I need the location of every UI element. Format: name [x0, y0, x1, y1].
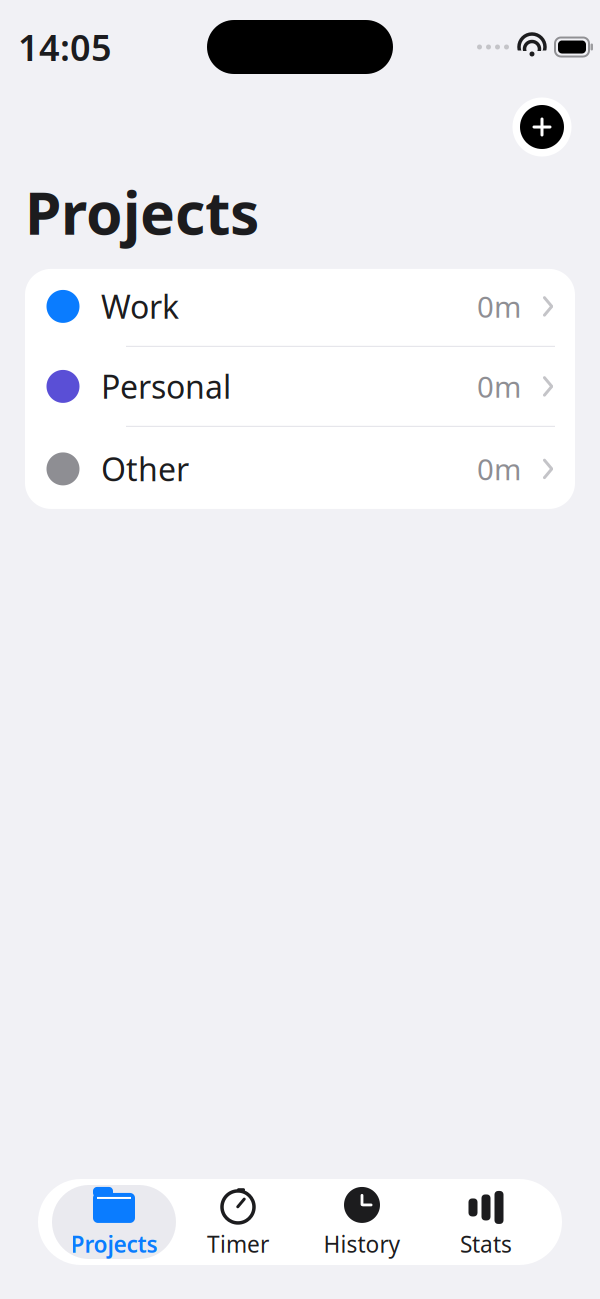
staticText: Stats: [460, 1229, 512, 1259]
staticText: Other: [101, 448, 189, 490]
staticText: Projects: [25, 173, 259, 251]
staticText: 14:05: [18, 23, 112, 71]
staticText: Personal: [101, 365, 231, 408]
staticText: 0m: [477, 287, 521, 326]
staticText: 0m: [477, 367, 521, 406]
staticText: 0m: [477, 449, 521, 488]
button[interactable]: Work: [25, 269, 575, 349]
button[interactable]: Projects: [52, 1185, 176, 1259]
staticText: History: [323, 1229, 400, 1259]
button[interactable]: Timer: [176, 1185, 300, 1259]
staticText: Projects: [70, 1229, 157, 1259]
button[interactable]: Personal: [25, 349, 575, 429]
staticText: Work: [101, 285, 179, 328]
button[interactable]: Stats: [424, 1185, 548, 1259]
staticText: Timer: [207, 1229, 269, 1259]
button[interactable]: Other: [25, 429, 575, 509]
button[interactable]: Add project: [510, 95, 574, 159]
button[interactable]: History: [300, 1185, 424, 1259]
